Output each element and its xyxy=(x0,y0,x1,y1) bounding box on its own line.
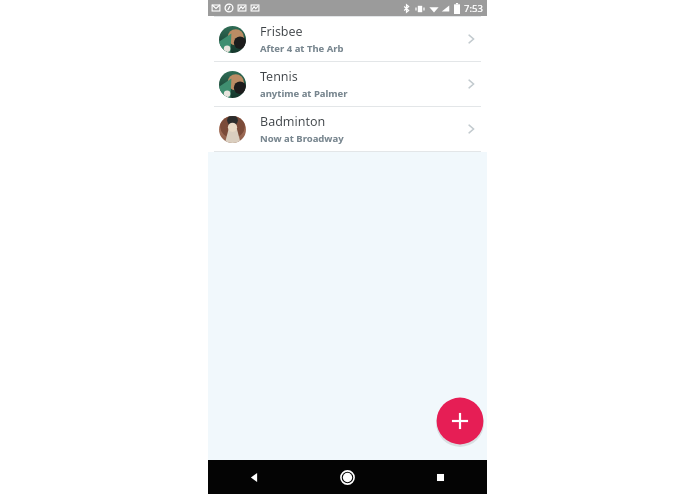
staticText: Tennis xyxy=(260,68,298,85)
staticText: After 4 at The Arb xyxy=(260,42,344,55)
button[interactable]: Tennis xyxy=(208,62,487,106)
button[interactable]: Home xyxy=(301,460,394,494)
other: Open Frisbee xyxy=(463,31,479,47)
other: Open Tennis xyxy=(463,76,479,92)
button[interactable]: Badminton xyxy=(208,107,487,151)
button[interactable]: Recents xyxy=(394,460,487,494)
button[interactable]: Back xyxy=(208,460,301,494)
staticText: Now at Broadway xyxy=(260,132,344,145)
button[interactable]: Frisbee xyxy=(208,17,487,61)
staticText: 7:53 xyxy=(464,2,483,15)
staticText: Frisbee xyxy=(260,23,303,40)
other: Open Badminton xyxy=(463,121,479,137)
staticText: Badminton xyxy=(260,113,326,130)
staticText: anytime at Palmer xyxy=(260,87,348,100)
button[interactable]: Add xyxy=(434,395,486,447)
